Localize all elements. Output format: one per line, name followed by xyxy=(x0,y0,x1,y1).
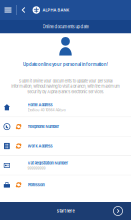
staticText: Telephone Number xyxy=(27,124,59,129)
staticText: Start here xyxy=(56,209,74,213)
staticText: Online documents update xyxy=(42,24,88,29)
staticText: 999999999 xyxy=(27,166,45,170)
staticText: Update online your personal information! xyxy=(23,62,108,67)
staticText: Vat Registration Number xyxy=(27,161,68,165)
button[interactable]: Start here xyxy=(0,202,131,220)
button[interactable]: Vat Registration Number xyxy=(0,156,131,175)
button[interactable]: Menu xyxy=(4,0,12,20)
staticText: ALPHA BANK xyxy=(43,8,70,12)
staticText: Σταδίου 40 10564 Αθήνα xyxy=(27,108,65,112)
staticText: Work Address xyxy=(27,144,52,148)
button[interactable]: Home Address xyxy=(0,98,131,117)
button[interactable]: Telephone Number xyxy=(0,117,131,136)
button[interactable]: Profession xyxy=(0,175,131,194)
button[interactable]: Back xyxy=(20,0,28,20)
staticText: Profession xyxy=(27,182,44,187)
staticText: Home Address xyxy=(27,102,52,107)
button[interactable]: Work Address xyxy=(0,137,131,155)
staticText: Submit online your documents to update y… xyxy=(11,78,120,94)
